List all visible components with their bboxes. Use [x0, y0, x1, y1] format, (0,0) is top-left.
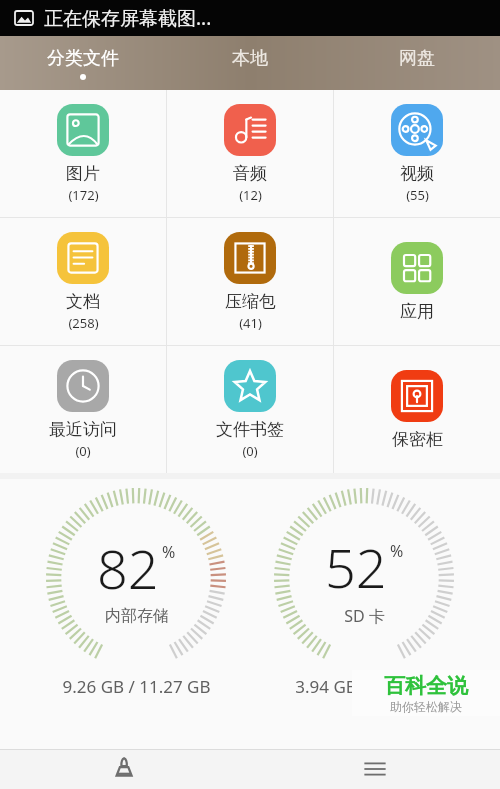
staticText: (172)	[68, 186, 99, 204]
staticText: 最近访问	[49, 419, 117, 440]
button[interactable]: 压缩包	[167, 218, 333, 345]
staticText: (12)	[239, 186, 262, 204]
staticText: 视频	[400, 163, 434, 184]
button[interactable]: 最近访问	[0, 346, 166, 473]
staticText: 分类文件	[47, 47, 119, 70]
button[interactable]: 文档	[0, 218, 166, 345]
button[interactable]: 应用	[334, 218, 500, 345]
staticText: 保密柜	[392, 429, 443, 450]
staticText: 内部存储	[105, 606, 169, 626]
staticText: (0)	[242, 442, 258, 460]
button[interactable]: 音频	[167, 90, 333, 217]
staticText: 图片	[66, 163, 100, 184]
staticText: 52	[325, 530, 387, 604]
button[interactable]: 图片	[0, 90, 166, 217]
staticText: 本地	[232, 47, 268, 70]
button[interactable]: 分类文件	[0, 36, 166, 90]
staticText: 助你轻松解决	[390, 699, 462, 714]
staticText: (55)	[406, 186, 429, 204]
button[interactable]: 视频	[334, 90, 500, 217]
button[interactable]: 网盘	[333, 36, 500, 90]
button[interactable]: 保密柜	[334, 346, 500, 473]
staticText: 应用	[400, 301, 434, 322]
staticText: 82	[97, 531, 159, 605]
button[interactable]: 文件书签	[167, 346, 333, 473]
button[interactable]: Clean	[0, 749, 250, 789]
staticText: 3.94 GB / 7.43 GB	[295, 675, 434, 698]
staticText: SD 卡	[344, 605, 385, 627]
staticText: 音频	[233, 163, 267, 184]
staticText: 9.26 GB / 11.27 GB	[62, 675, 211, 698]
staticText: (41)	[239, 314, 262, 332]
staticText: %	[390, 540, 404, 562]
button[interactable]: 本地	[166, 36, 333, 90]
staticText: 文档	[66, 291, 100, 312]
staticText: 正在保存屏幕截图...	[44, 5, 212, 31]
staticText: (258)	[68, 314, 99, 332]
staticText: %	[162, 541, 176, 563]
staticText: 网盘	[399, 47, 435, 70]
staticText: (0)	[75, 442, 91, 460]
button[interactable]: Menu	[250, 749, 500, 789]
staticText: 文件书签	[216, 419, 284, 440]
staticText: 压缩包	[225, 291, 276, 312]
staticText: 百科全说	[384, 673, 468, 699]
